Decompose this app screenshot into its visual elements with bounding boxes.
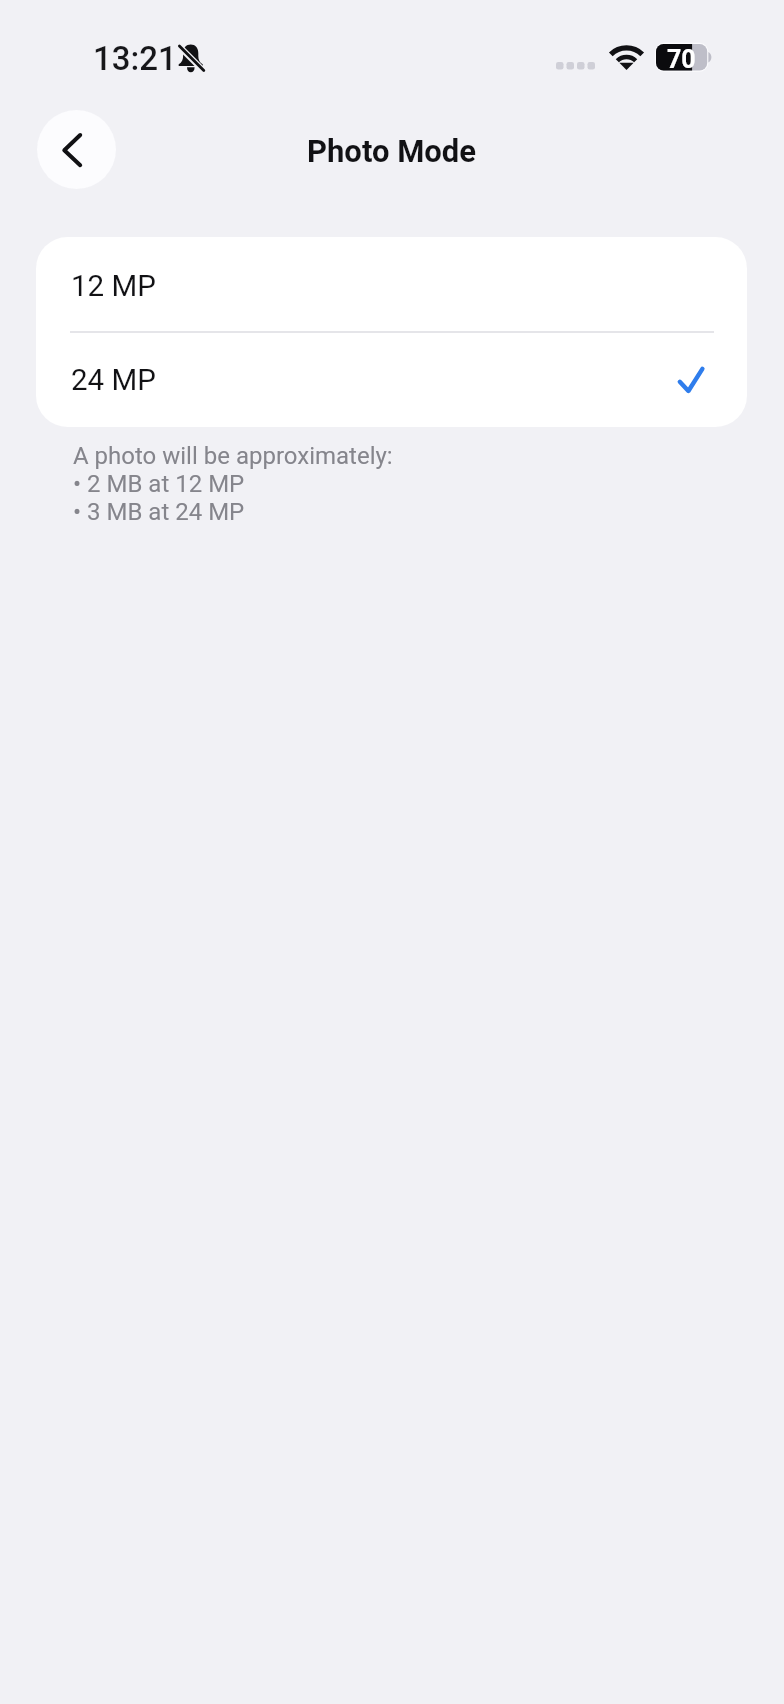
staticText: 70 <box>667 45 696 72</box>
staticText: Photo Mode <box>307 133 477 169</box>
button[interactable]: Back <box>37 110 116 189</box>
staticText: A photo will be approximately: • 2 MB at… <box>73 442 393 526</box>
button[interactable]: 12 MP <box>36 237 747 331</box>
staticText: 12 MP <box>71 269 156 304</box>
button[interactable]: 24 MP <box>36 333 747 427</box>
staticText: 24 MP <box>71 363 156 398</box>
staticText: 13:21 <box>93 39 177 78</box>
